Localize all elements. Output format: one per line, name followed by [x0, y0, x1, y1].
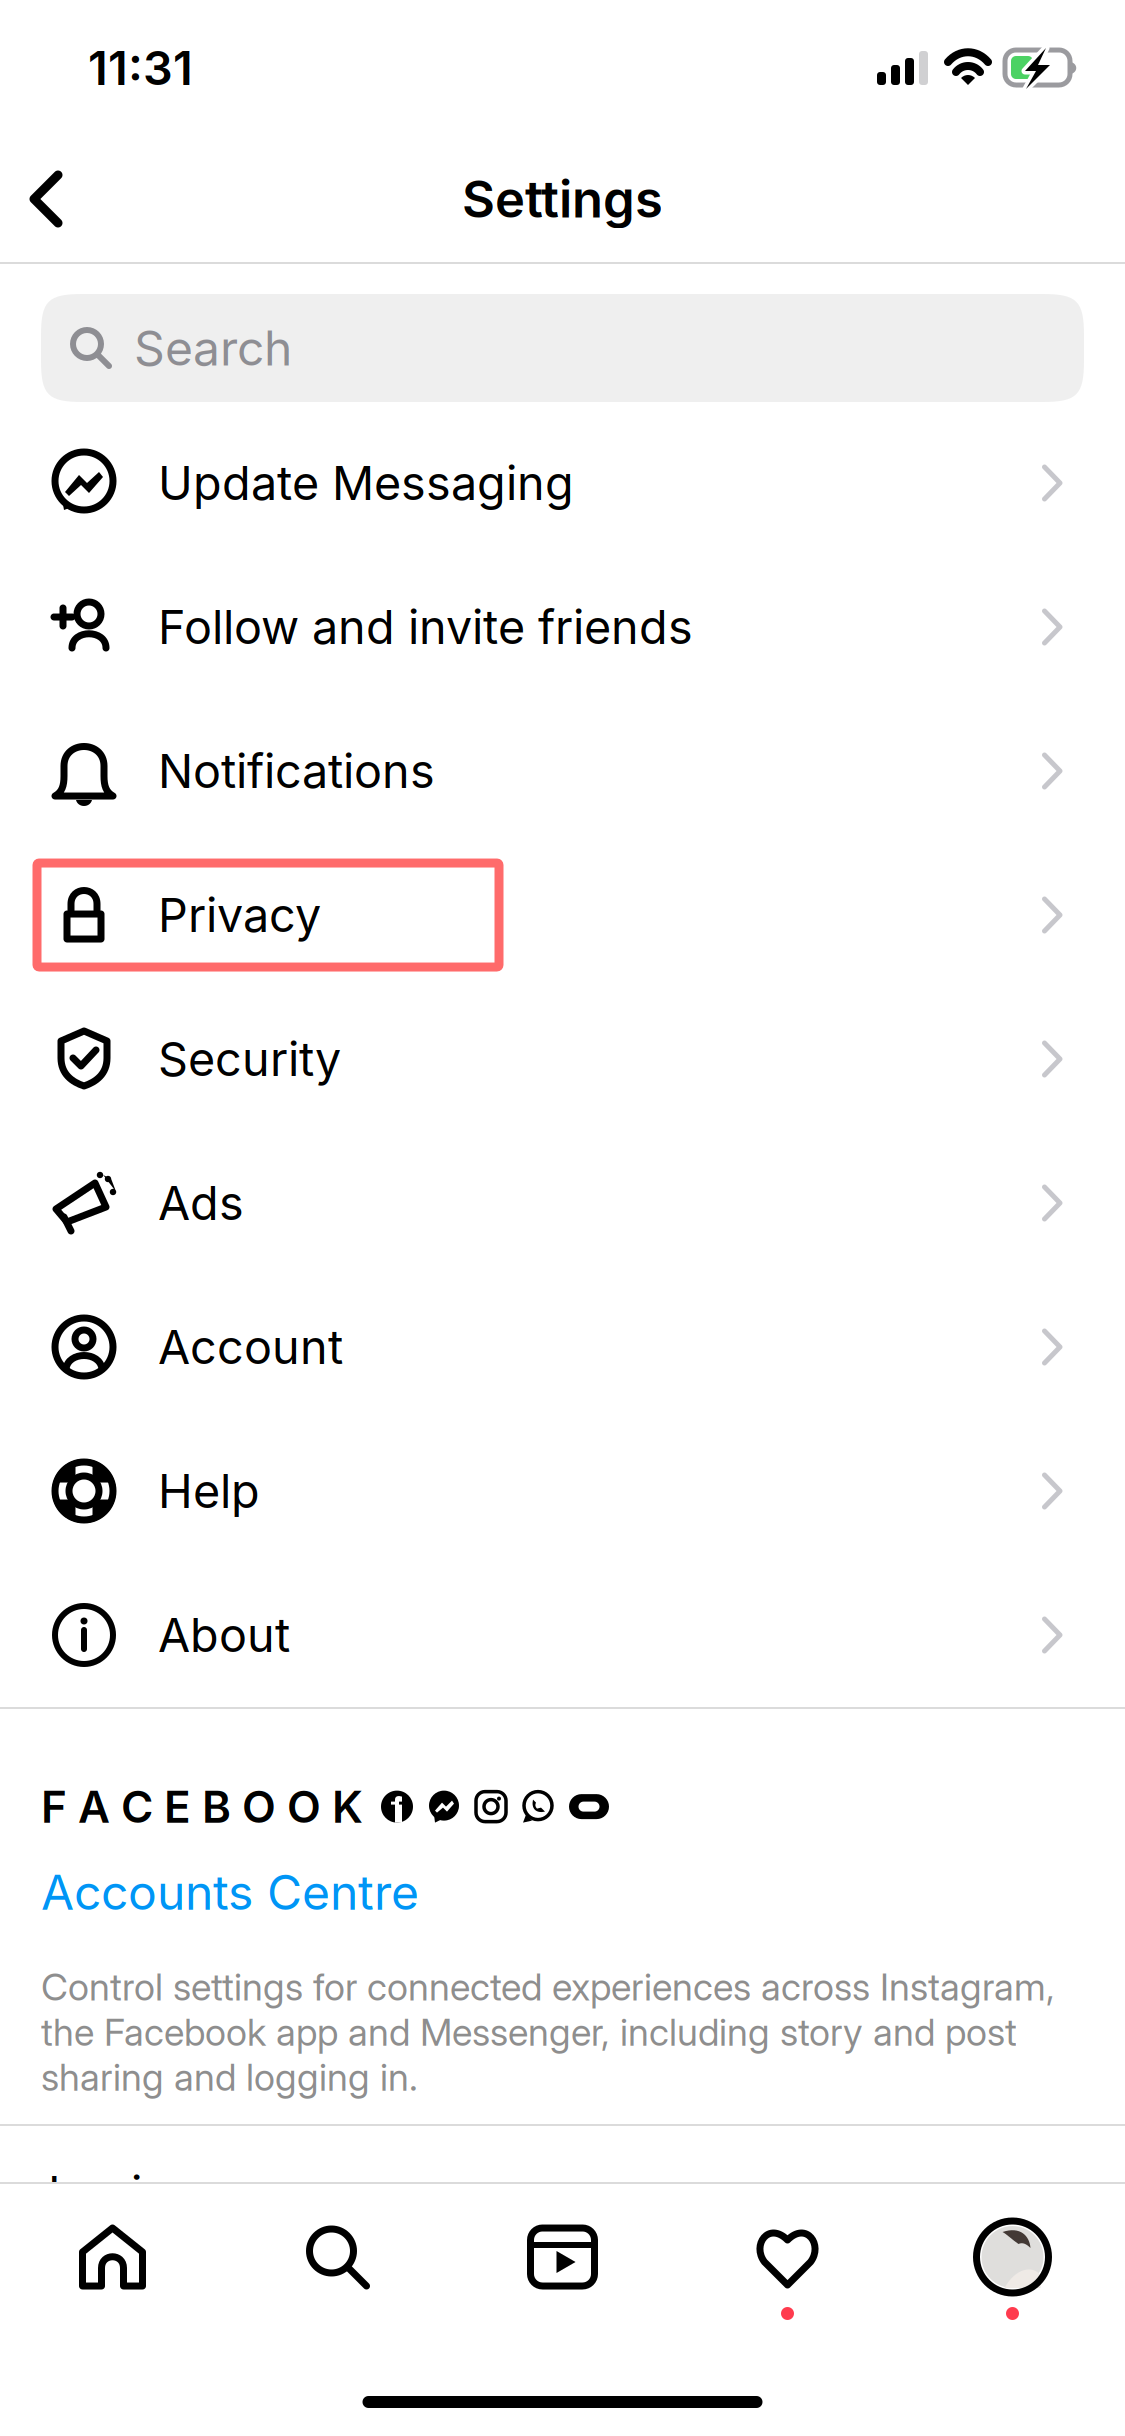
button[interactable]: Update Messaging [0, 411, 1125, 555]
staticText: Security [158, 1031, 341, 1087]
staticText: Notifications [158, 743, 435, 799]
staticText: About [158, 1607, 290, 1663]
staticText: Accounts Centre [41, 1863, 419, 1921]
staticText: Update Messaging [158, 455, 574, 511]
button[interactable]: Search [225, 2209, 450, 2328]
button[interactable]: Follow and invite friends [0, 555, 1125, 699]
staticText: Help [158, 1463, 260, 1519]
button[interactable]: Ads [0, 1131, 1125, 1275]
staticText: Logins [48, 2165, 195, 2221]
button[interactable]: Profile [900, 2209, 1125, 2328]
staticText: Privacy [158, 887, 321, 943]
staticText: Follow and invite friends [158, 599, 693, 655]
staticText: Account [158, 1319, 343, 1375]
button[interactable]: Privacy [0, 843, 1125, 987]
button[interactable]: Reels [450, 2209, 675, 2328]
button[interactable]: Home [0, 2209, 225, 2328]
button[interactable]: Account [0, 1275, 1125, 1419]
staticText: Search [134, 319, 292, 377]
button[interactable]: Help [0, 1419, 1125, 1563]
button[interactable]: Notifications [0, 699, 1125, 843]
staticText: 11:31 [88, 40, 193, 96]
button[interactable]: About [0, 1563, 1125, 1707]
staticText: Control settings for connected experienc… [41, 1964, 1055, 2100]
button[interactable]: Accounts Centre [41, 1833, 419, 1921]
button[interactable]: Back [0, 134, 104, 264]
button[interactable]: Activity [675, 2209, 900, 2328]
button[interactable]: Security [0, 987, 1125, 1131]
staticText: Ads [158, 1175, 244, 1231]
staticText: F A C E B O O K [41, 1780, 363, 1833]
staticText: Settings [462, 168, 663, 230]
